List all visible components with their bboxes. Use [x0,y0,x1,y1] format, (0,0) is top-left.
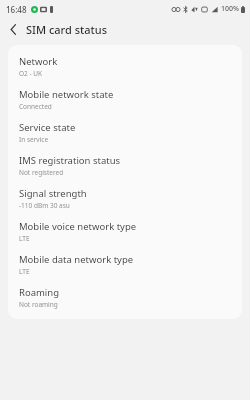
staticText: SIM card status [26,22,108,37]
button[interactable]: Mobile data network type [8,248,242,281]
button[interactable]: Signal strength [8,182,242,215]
staticText: Service state [19,121,76,134]
staticText: 100% [221,4,239,14]
staticText: Mobile data network type [19,253,134,266]
button[interactable]: Roaming [8,281,242,314]
staticText: Not registered [19,168,64,177]
button[interactable]: Network [8,50,242,83]
staticText: Mobile network state [19,88,114,101]
staticText: LTE [19,234,30,243]
staticText: 16:48 [6,4,27,15]
staticText: Not roaming [19,300,58,309]
staticText: IMS registration status [19,154,121,167]
staticText: O2 - UK [19,69,43,78]
staticText: Roaming [19,286,60,299]
staticText: In service [19,135,49,144]
staticText: LTE [19,267,30,276]
button[interactable]: IMS registration status [8,149,242,182]
staticText: Signal strength [19,187,87,200]
staticText: -110 dBm 30 asu [19,201,70,210]
button[interactable]: Service state [8,116,242,149]
button[interactable]: Mobile voice network type [8,215,242,248]
button[interactable]: Back [4,20,22,38]
button[interactable]: Mobile network state [8,83,242,116]
staticText: Connected [19,102,52,111]
staticText: Network [19,55,58,68]
staticText: Mobile voice network type [19,220,137,233]
